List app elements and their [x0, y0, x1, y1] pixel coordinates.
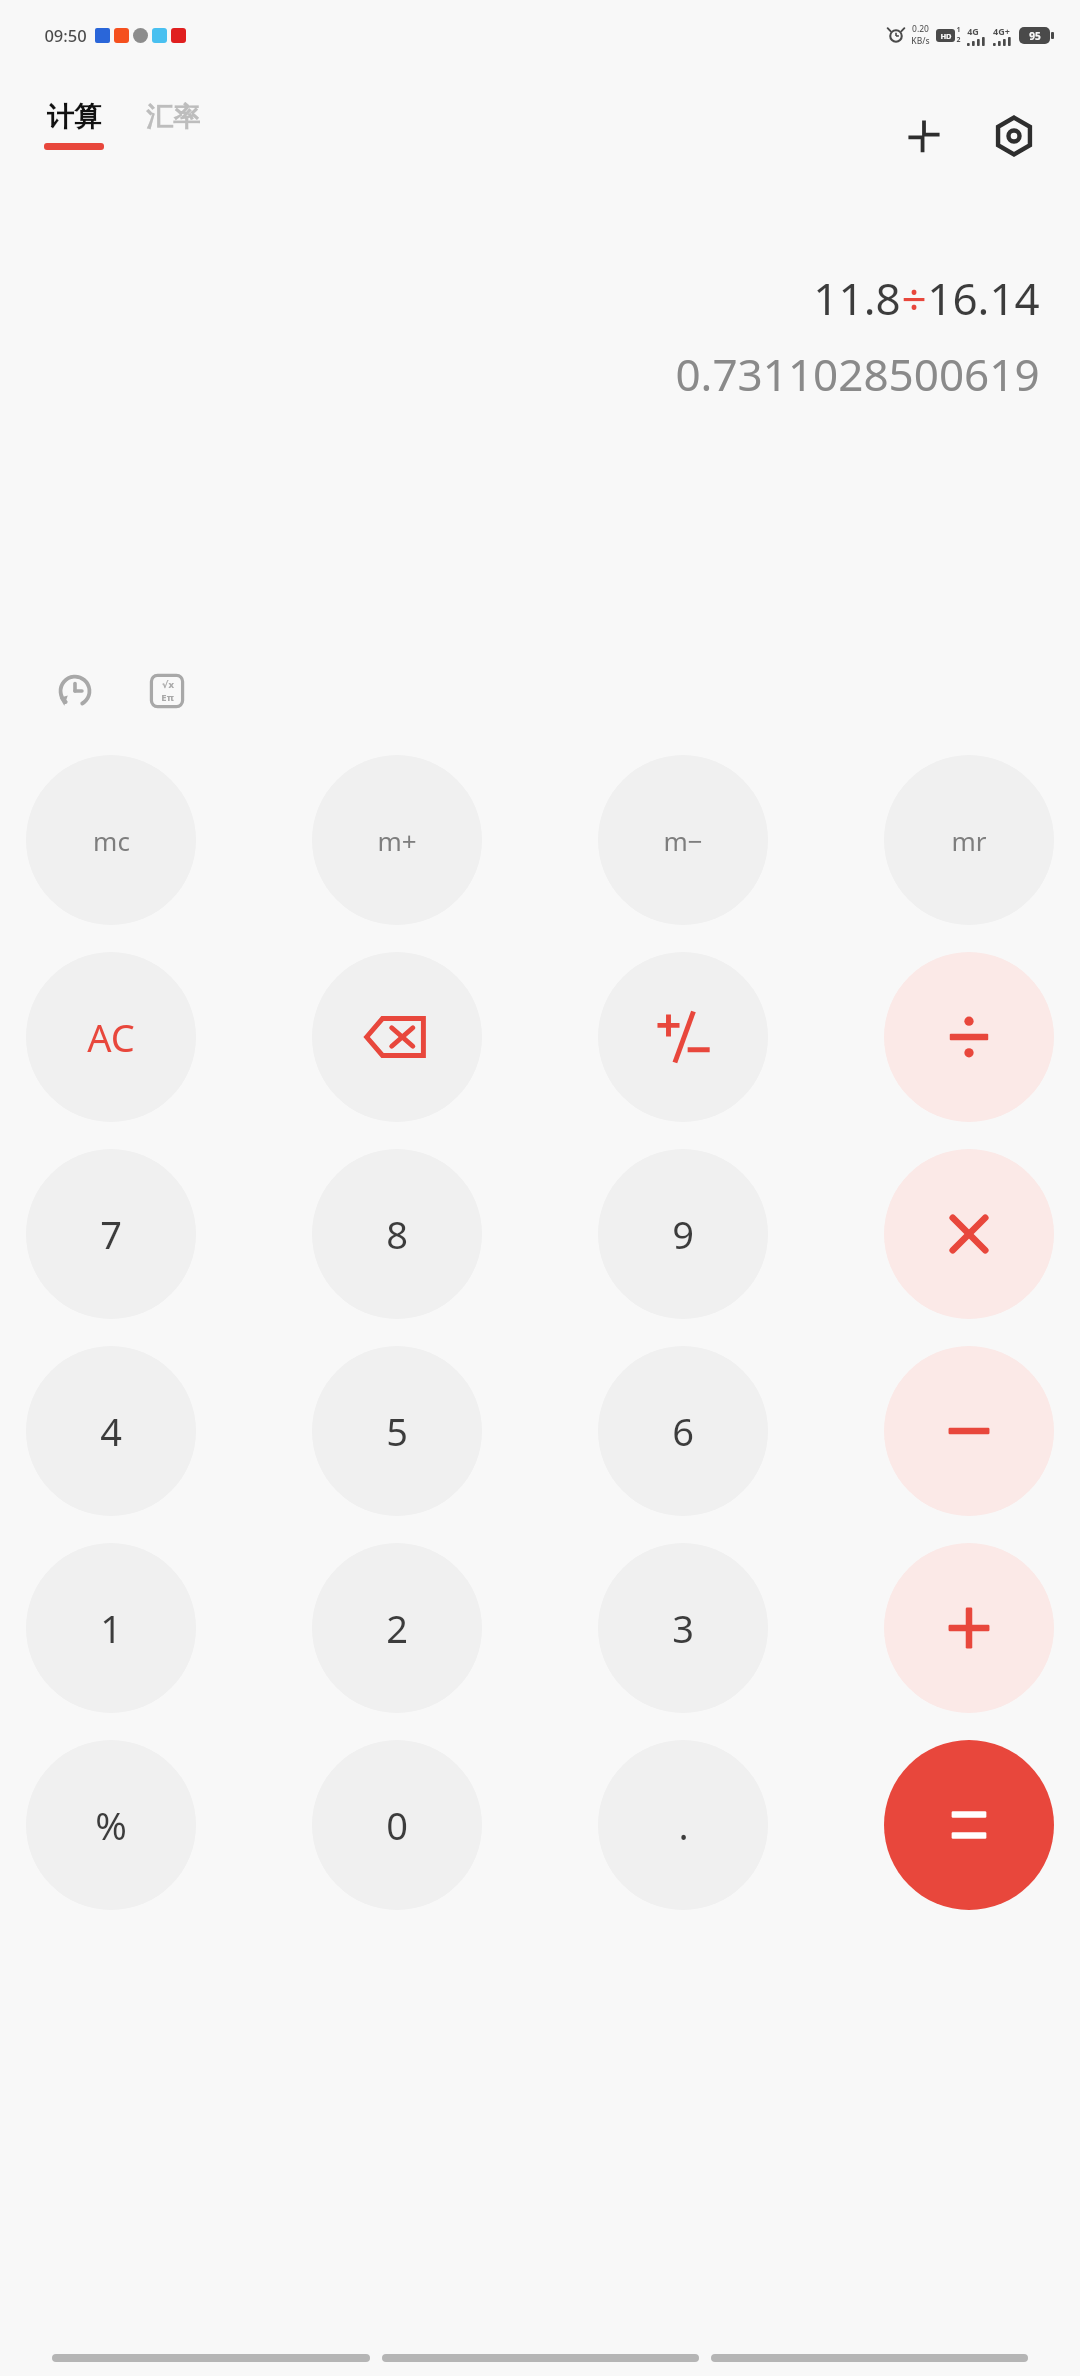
- staticText: mr: [951, 823, 987, 858]
- button[interactable]: 4: [26, 1346, 196, 1516]
- button[interactable]: [884, 1149, 1054, 1319]
- staticText: 计算: [47, 100, 101, 134]
- button[interactable]: [884, 1543, 1054, 1713]
- staticText: √x: [162, 678, 174, 691]
- staticText: 11.8: [813, 268, 901, 328]
- staticText: 9: [672, 1208, 694, 1260]
- staticText: 16.14: [927, 268, 1040, 328]
- button[interactable]: 9: [598, 1149, 768, 1319]
- staticText: 1: [956, 25, 961, 35]
- staticText: m−: [663, 823, 703, 858]
- button[interactable]: Home: [382, 2354, 699, 2362]
- staticText: %: [95, 1799, 127, 1851]
- button[interactable]: History: [44, 660, 106, 722]
- button[interactable]: 8: [312, 1149, 482, 1319]
- button[interactable]: 2: [312, 1543, 482, 1713]
- staticText: .: [678, 1799, 689, 1851]
- staticText: 4G: [967, 25, 979, 37]
- staticText: HD: [940, 31, 952, 41]
- button[interactable]: 计算: [44, 100, 104, 150]
- staticText: 7: [100, 1208, 122, 1260]
- staticText: 1: [100, 1602, 122, 1654]
- button[interactable]: Collapse: [894, 106, 954, 166]
- button[interactable]: 3: [598, 1543, 768, 1713]
- button[interactable]: mc: [26, 755, 196, 925]
- button[interactable]: m−: [598, 755, 768, 925]
- button[interactable]: 5: [312, 1346, 482, 1516]
- button[interactable]: .: [598, 1740, 768, 1910]
- button[interactable]: Toggle sign: [598, 952, 768, 1122]
- button[interactable]: [884, 952, 1054, 1122]
- staticText: ÷: [901, 268, 927, 328]
- button[interactable]: Settings: [984, 106, 1044, 166]
- staticText: Eπ: [161, 691, 174, 704]
- button[interactable]: mr: [884, 755, 1054, 925]
- button[interactable]: m+: [312, 755, 482, 925]
- button[interactable]: Scientific mode: [136, 660, 198, 722]
- staticText: mc: [93, 823, 130, 858]
- button[interactable]: [884, 1740, 1054, 1910]
- staticText: 4: [100, 1405, 122, 1457]
- button[interactable]: 0: [312, 1740, 482, 1910]
- button[interactable]: 7: [26, 1149, 196, 1319]
- button[interactable]: Backspace: [312, 952, 482, 1122]
- staticText: 4G+: [993, 25, 1010, 37]
- staticText: 2: [386, 1602, 408, 1654]
- staticText: KB/s: [911, 35, 930, 47]
- staticText: 5: [386, 1405, 408, 1457]
- button[interactable]: %: [26, 1740, 196, 1910]
- staticText: 汇率: [146, 100, 200, 134]
- staticText: 09:50: [44, 24, 87, 46]
- staticText: 0.20: [912, 23, 929, 35]
- button[interactable]: Recents: [711, 2354, 1028, 2362]
- staticText: AC: [87, 1011, 135, 1063]
- button[interactable]: 汇率: [146, 100, 200, 134]
- staticText: 8: [386, 1208, 408, 1260]
- button[interactable]: 6: [598, 1346, 768, 1516]
- button[interactable]: [884, 1346, 1054, 1516]
- staticText: m+: [377, 823, 417, 858]
- staticText: 2: [956, 35, 961, 45]
- staticText: 3: [672, 1602, 694, 1654]
- button[interactable]: AC: [26, 952, 196, 1122]
- staticText: 95: [1029, 29, 1041, 43]
- staticText: 0: [386, 1799, 408, 1851]
- button[interactable]: 1: [26, 1543, 196, 1713]
- staticText: 0.7311028500619: [675, 344, 1040, 404]
- button[interactable]: Back: [52, 2354, 370, 2362]
- staticText: 6: [672, 1405, 694, 1457]
